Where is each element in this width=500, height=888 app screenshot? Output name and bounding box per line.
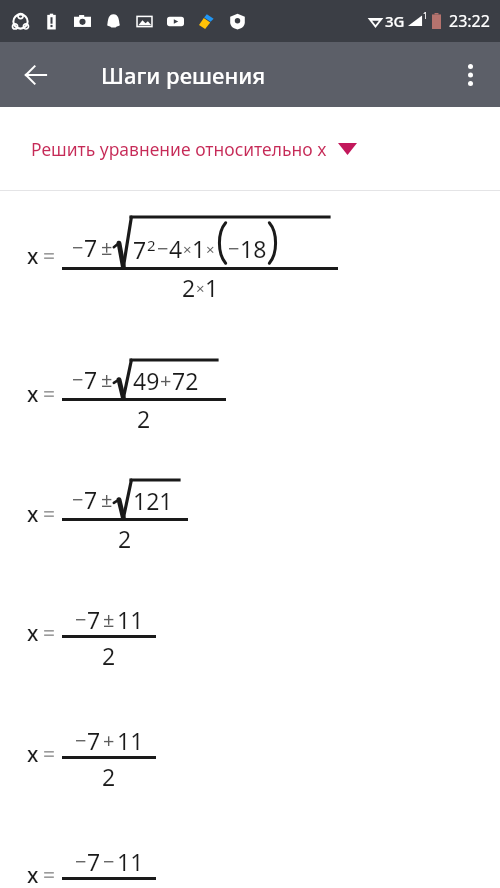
staticText: = — [43, 861, 56, 888]
staticText: 7 — [133, 234, 147, 265]
staticText: 7 — [84, 364, 98, 395]
staticText: 4 — [169, 233, 183, 264]
staticText: 72 — [172, 365, 199, 396]
staticText: 49 — [133, 365, 160, 396]
staticText: + — [160, 367, 172, 394]
staticText: × — [183, 239, 192, 259]
staticText: 23:22 — [449, 10, 490, 32]
staticText: 11 — [117, 725, 144, 756]
staticText: × — [196, 278, 205, 298]
staticText: 2 — [137, 403, 151, 434]
staticText: 11 — [117, 846, 144, 877]
staticText: 1 — [205, 272, 219, 303]
staticText: x — [27, 500, 39, 529]
button[interactable]: Решить уравнение относительно x — [0, 107, 500, 190]
staticText: 7 — [84, 484, 98, 515]
staticText: = — [43, 619, 56, 648]
staticText: 18 — [240, 233, 267, 264]
staticText: 1 — [423, 10, 428, 21]
button[interactable]: Back — [12, 51, 60, 99]
staticText: ± — [101, 366, 113, 393]
staticText: − — [72, 366, 84, 393]
staticText: x — [27, 380, 39, 409]
staticText: − — [75, 727, 87, 754]
staticText: x — [27, 861, 39, 888]
staticText: 121 — [133, 485, 173, 516]
button[interactable]: More options — [446, 51, 494, 99]
staticText: − — [75, 848, 87, 875]
staticText: = — [43, 740, 56, 769]
staticText: 2 — [118, 523, 132, 554]
staticText: − — [228, 235, 240, 262]
staticText: + — [103, 727, 115, 754]
staticText: × — [206, 239, 215, 259]
staticText: 7 — [87, 604, 101, 635]
staticText: 7 — [84, 232, 98, 263]
staticText: 2 — [147, 235, 156, 255]
staticText: = — [43, 500, 56, 529]
staticText: − — [157, 235, 169, 262]
staticText: x — [27, 619, 39, 648]
staticText: 2 — [102, 761, 116, 792]
staticText: 1 — [192, 233, 206, 264]
staticText: 7 — [87, 846, 101, 877]
staticText: = — [43, 242, 56, 271]
staticText: = — [43, 380, 56, 409]
staticText: Решить уравнение относительно x — [31, 137, 327, 161]
staticText: ± — [101, 486, 113, 513]
staticText: − — [75, 606, 87, 633]
staticText: 3G — [385, 11, 405, 31]
staticText: − — [72, 234, 84, 261]
staticText: 2 — [102, 640, 116, 671]
staticText: ± — [103, 606, 115, 633]
staticText: − — [103, 848, 115, 875]
staticText: 11 — [117, 604, 144, 635]
staticText: x — [27, 242, 39, 271]
staticText: 2 — [182, 272, 196, 303]
staticText: Шаги решения — [101, 60, 266, 90]
staticText: ± — [101, 234, 113, 261]
staticText: x — [27, 740, 39, 769]
staticText: 7 — [87, 725, 101, 756]
staticText: − — [72, 486, 84, 513]
